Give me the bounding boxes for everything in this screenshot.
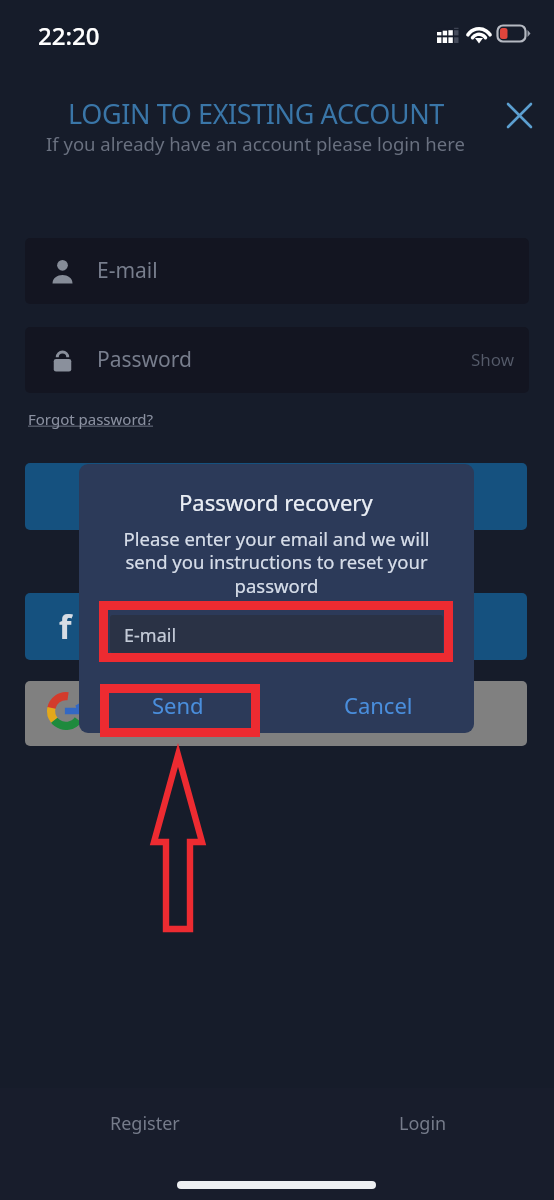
button[interactable]: E-mail (110, 615, 443, 653)
staticText: Password (97, 345, 192, 374)
button[interactable]: Register (0, 1092, 277, 1154)
button[interactable]: Show (471, 348, 515, 371)
staticText: Register (110, 1111, 180, 1136)
button[interactable] (25, 463, 527, 530)
button[interactable]: Cancel (303, 680, 454, 730)
staticText: E-mail (97, 256, 158, 285)
button[interactable]: E-mail (25, 238, 529, 304)
button[interactable]: Login (277, 1092, 554, 1154)
staticText: E-mail (124, 623, 177, 648)
button[interactable]: Close (495, 91, 543, 139)
staticText: LOGIN TO EXISTING ACCOUNT (68, 95, 444, 127)
staticText: Forgot password? (28, 409, 154, 429)
staticText: f (59, 605, 72, 649)
button[interactable]: Forgot password? (28, 409, 154, 429)
staticText: 22:20 (38, 19, 100, 52)
staticText: Please enter your email and we will send… (116, 526, 437, 599)
button[interactable] (25, 681, 527, 746)
button[interactable]: Password (25, 327, 529, 393)
staticText: Send (152, 690, 204, 720)
button[interactable]: Send (100, 680, 255, 730)
staticText: Login (399, 1111, 447, 1136)
staticText: Password recovery (179, 487, 373, 517)
button[interactable]: f (25, 593, 527, 660)
staticText: Cancel (344, 690, 413, 720)
staticText: If you already have an account please lo… (46, 131, 465, 155)
